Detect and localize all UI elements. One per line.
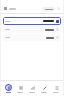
button[interactable]: Search	[15, 81, 25, 95]
button[interactable]	[42, 7, 55, 11]
button[interactable]: Selected	[3, 17, 61, 25]
button[interactable]: Home	[3, 81, 13, 95]
button[interactable]	[3, 34, 61, 41]
button[interactable]: Profile	[51, 81, 61, 95]
button[interactable]: Saved	[39, 81, 49, 95]
button[interactable]	[3, 26, 61, 33]
button[interactable]: Menu	[1, 4, 63, 13]
button[interactable]: Activity	[27, 81, 37, 95]
button[interactable]: Selected	[56, 20, 59, 23]
other: Menu	[4, 7, 7, 10]
button[interactable]: More options	[57, 7, 60, 10]
